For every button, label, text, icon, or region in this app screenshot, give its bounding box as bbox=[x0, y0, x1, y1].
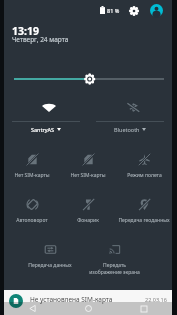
staticText: Режим полета bbox=[127, 172, 162, 179]
staticText: Передача данных bbox=[28, 262, 72, 269]
button[interactable]: Home bbox=[60, 302, 116, 315]
staticText: Передать изображение экрана bbox=[89, 262, 140, 276]
button[interactable]: Нет SIM-карты bbox=[60, 154, 116, 179]
staticText: Четверг, 24 марта bbox=[12, 35, 69, 44]
button[interactable]: Передача геоданных bbox=[116, 199, 172, 224]
staticText: Автоповорот bbox=[16, 217, 48, 224]
button[interactable]: Фонарик bbox=[60, 199, 116, 224]
button[interactable]: Режим полета bbox=[116, 154, 172, 179]
staticText: Фонарик bbox=[77, 217, 99, 224]
button[interactable]: Передать изображение экрана bbox=[82, 244, 146, 276]
button[interactable]: Settings bbox=[127, 4, 140, 17]
button[interactable]: Нет SIM-карты bbox=[4, 154, 60, 179]
staticText: SantryAS bbox=[31, 126, 55, 133]
staticText: Передача геоданных bbox=[118, 217, 170, 224]
staticText: 81 % bbox=[107, 7, 120, 14]
button[interactable]: Bluetooth bbox=[88, 94, 172, 133]
button[interactable]: Автоповорот bbox=[4, 199, 60, 224]
staticText: Нет SIM-карты bbox=[14, 172, 50, 179]
button[interactable]: Не установлена SIM-карта bbox=[9, 294, 167, 308]
staticText: Нет SIM-карты bbox=[70, 172, 106, 179]
button[interactable]: Back bbox=[4, 302, 60, 315]
button[interactable]: Wi-Fi bbox=[4, 94, 88, 133]
staticText: Bluetooth bbox=[114, 126, 140, 133]
staticText: 13:19 bbox=[12, 24, 39, 38]
button[interactable]: User account bbox=[149, 3, 163, 17]
button[interactable]: Передача данных bbox=[18, 244, 82, 269]
button[interactable]: Recent apps bbox=[116, 302, 172, 315]
staticText: 22.03.16 bbox=[145, 296, 167, 303]
button[interactable]: Brightness bbox=[4, 66, 172, 90]
staticText: Не установлена SIM-карта bbox=[30, 295, 113, 304]
